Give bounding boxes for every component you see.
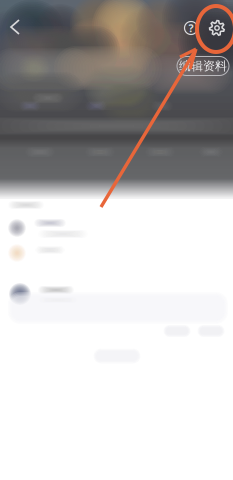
button[interactable]: Back (1, 13, 29, 41)
staticText: ? (188, 21, 193, 35)
button[interactable]: 编辑资料 (177, 56, 229, 75)
button[interactable]: Help (180, 17, 202, 39)
staticText: 编辑资料 (179, 59, 227, 73)
button[interactable]: Settings (205, 16, 229, 40)
